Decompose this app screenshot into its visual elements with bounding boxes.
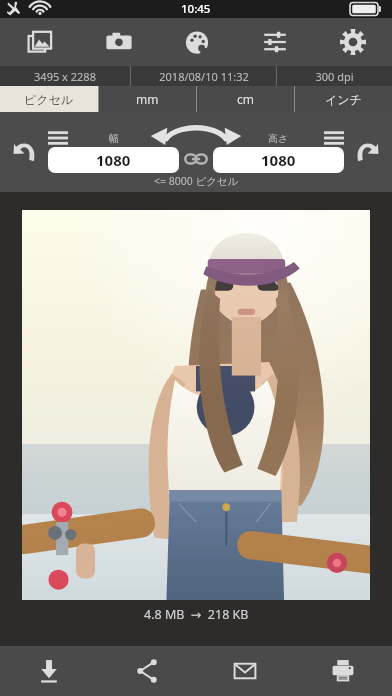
button[interactable]: cm [197,86,294,112]
staticText: mm [136,91,159,107]
button[interactable]: Camera [79,18,158,66]
staticText: 幅 [109,132,119,145]
staticText: cm [237,91,254,107]
staticText: 300 dpi [315,69,354,84]
staticText: ピクセル [24,92,74,107]
button[interactable] [22,210,370,600]
button[interactable]: 1080 [213,147,344,173]
button[interactable]: Redo [344,130,388,174]
button[interactable]: mm [99,86,196,112]
button[interactable]: Print [294,646,392,696]
button[interactable]: Email [196,646,294,696]
button[interactable]: Save [0,646,98,696]
button[interactable]: Link aspect ratio [179,130,213,174]
button[interactable]: Adjust [236,18,314,66]
button[interactable]: ピクセル [0,86,98,112]
staticText: 1080 [96,150,131,170]
button[interactable]: インチ [295,86,392,112]
button[interactable]: Palette [158,18,236,66]
staticText: 1080 [261,150,296,170]
staticText: インチ [325,92,362,107]
staticText: 4.8 MB → 218 KB [144,606,249,623]
button[interactable]: Gallery [0,18,79,66]
staticText: 10:45 [181,1,211,17]
staticText: 3495 x 2288 [34,69,96,84]
staticText: 高さ [268,132,289,145]
button[interactable]: 1080 [48,147,179,173]
staticText: <= 8000 ピクセル [154,174,239,188]
staticText: 2018/08/10 11:32 [159,69,249,84]
button[interactable]: Settings [314,18,392,66]
button[interactable]: Share [98,646,196,696]
button[interactable]: Undo [4,130,48,174]
